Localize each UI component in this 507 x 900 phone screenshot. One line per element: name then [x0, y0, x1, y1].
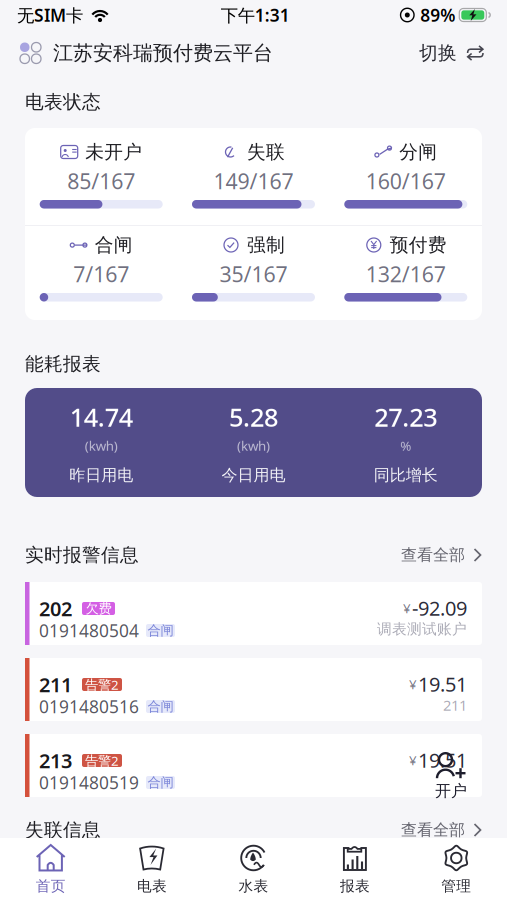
- button[interactable]: 管理: [406, 839, 507, 899]
- staticText: (kwh): [85, 437, 118, 454]
- button[interactable]: 报表: [304, 839, 406, 899]
- staticText: 欠费: [85, 600, 111, 617]
- button[interactable]: 首页: [0, 839, 101, 899]
- staticText: 实时报警信息: [25, 543, 139, 566]
- staticText: -92.09: [412, 595, 467, 621]
- staticText: ¥: [403, 599, 411, 617]
- staticText: 能耗报表: [25, 352, 101, 375]
- button[interactable]: 切换: [419, 35, 485, 70]
- staticText: 失联信息: [25, 818, 101, 841]
- staticText: 合闸: [147, 622, 173, 639]
- staticText: 合闸: [147, 698, 173, 715]
- staticText: 合闸: [147, 774, 173, 791]
- staticText: 强制: [247, 233, 285, 256]
- staticText: 89%: [420, 3, 455, 26]
- staticText: 160/167: [366, 167, 446, 195]
- staticText: 85/167: [67, 167, 135, 195]
- staticText: (kwh): [237, 437, 270, 454]
- staticText: 7/167: [73, 260, 129, 288]
- staticText: 211: [443, 695, 467, 715]
- staticText: 调表测试账户: [377, 620, 467, 638]
- staticText: 132/167: [366, 260, 446, 288]
- staticText: 报表: [340, 877, 370, 895]
- staticText: 分闸: [399, 140, 437, 163]
- staticText: 14.74: [70, 400, 133, 434]
- staticText: 江苏安科瑞预付费云平台: [53, 41, 273, 65]
- staticText: 149/167: [213, 167, 293, 195]
- button[interactable]: 202: [25, 582, 482, 645]
- staticText: 昨日用电: [69, 465, 133, 485]
- staticText: 19.51: [418, 671, 467, 697]
- staticText: %: [400, 437, 411, 454]
- staticText: 电表: [137, 877, 167, 895]
- staticText: 查看全部: [401, 545, 465, 565]
- staticText: ¥: [409, 675, 417, 693]
- staticText: 管理: [441, 877, 471, 895]
- staticText: 5.28: [229, 400, 278, 434]
- staticText: 告警2: [85, 752, 119, 769]
- staticText: 同比增长: [374, 465, 438, 485]
- staticText: 202: [39, 595, 72, 622]
- staticText: 水表: [238, 877, 268, 895]
- staticText: 27.23: [374, 400, 437, 434]
- button[interactable]: 水表: [203, 839, 304, 899]
- button[interactable]: 开户: [423, 750, 479, 802]
- staticText: 开户: [435, 781, 467, 801]
- button[interactable]: 电表: [101, 839, 203, 899]
- staticText: 失联: [247, 140, 285, 163]
- staticText: 查看全部: [401, 820, 465, 840]
- staticText: 213: [39, 747, 72, 774]
- button[interactable]: 211: [25, 658, 482, 721]
- staticText: 0191480516: [39, 695, 139, 718]
- staticText: 下午1:31: [221, 3, 290, 26]
- staticText: 211: [39, 671, 72, 698]
- staticText: 电表状态: [25, 90, 101, 113]
- staticText: 19.51: [418, 747, 467, 773]
- staticText: 0191480519: [39, 771, 139, 794]
- staticText: 切换: [419, 41, 457, 64]
- button[interactable]: 213: [25, 734, 482, 797]
- staticText: 合闸: [95, 233, 133, 256]
- staticText: 首页: [36, 877, 66, 895]
- staticText: 预付费: [390, 233, 447, 256]
- button[interactable]: 查看全部: [401, 820, 482, 840]
- staticText: 0191480504: [39, 619, 139, 642]
- button[interactable]: 查看全部: [401, 545, 482, 565]
- staticText: 告警2: [85, 676, 119, 693]
- staticText: 35/167: [219, 260, 287, 288]
- staticText: 今日用电: [221, 465, 285, 485]
- staticText: ¥: [409, 751, 417, 769]
- staticText: 未开户: [85, 140, 142, 163]
- staticText: 无SIM卡: [17, 3, 83, 26]
